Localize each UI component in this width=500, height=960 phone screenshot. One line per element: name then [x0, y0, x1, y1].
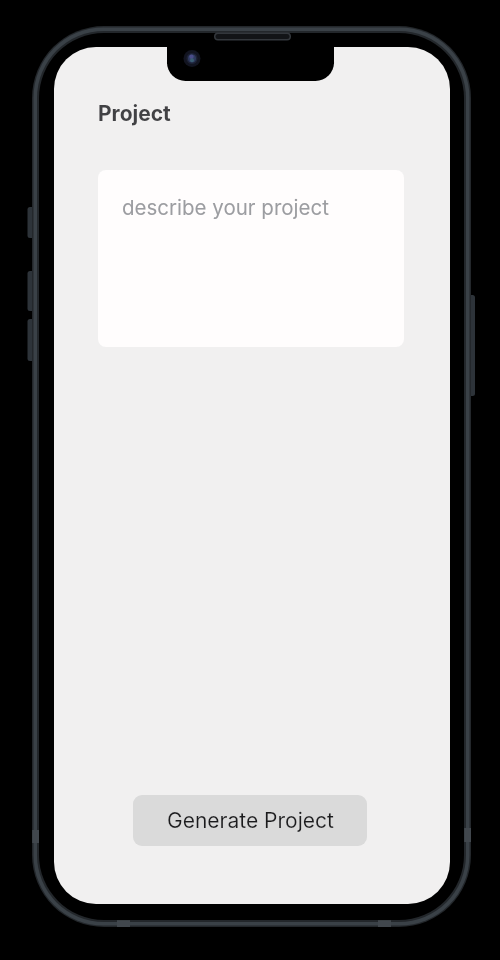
staticText: Project	[98, 101, 171, 126]
staticText: describe your project	[122, 195, 329, 220]
button[interactable]: Generate Project	[133, 795, 367, 846]
staticText: Generate Project	[167, 808, 334, 833]
button[interactable]: describe your project	[98, 170, 404, 347]
